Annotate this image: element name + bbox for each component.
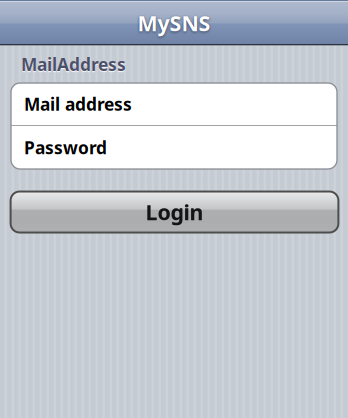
button[interactable]: Password bbox=[11, 126, 337, 169]
staticText: Mail address bbox=[24, 92, 132, 115]
button[interactable]: Login bbox=[11, 191, 338, 232]
staticText: Password bbox=[24, 136, 107, 159]
staticText: MySNS bbox=[137, 9, 210, 37]
staticText: Login bbox=[145, 198, 203, 226]
button[interactable]: Mail address bbox=[11, 83, 337, 125]
staticText: MailAddress bbox=[21, 53, 126, 76]
